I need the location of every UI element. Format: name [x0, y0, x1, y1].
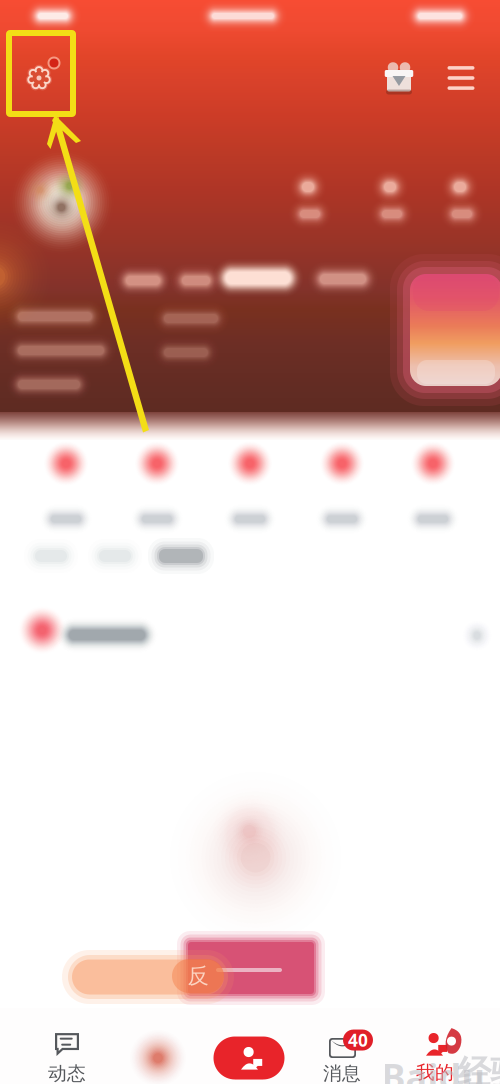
- staticText: 40: [348, 1028, 368, 1051]
- staticText: 消息: [323, 1062, 361, 1084]
- button[interactable]: [114, 441, 200, 533]
- staticText: 反: [187, 963, 208, 989]
- button[interactable]: [23, 441, 109, 533]
- button[interactable]: Menu: [437, 54, 485, 102]
- button[interactable]: Settings: [16, 55, 62, 101]
- button[interactable]: 40: [292, 1020, 392, 1084]
- button[interactable]: 我的: [385, 1020, 485, 1084]
- button[interactable]: 动态: [17, 1020, 117, 1084]
- button[interactable]: [390, 441, 476, 533]
- button[interactable]: Post: [204, 1020, 294, 1084]
- button[interactable]: Discover: [108, 1020, 208, 1084]
- staticText: 我的: [416, 1061, 454, 1084]
- button[interactable]: [299, 441, 385, 533]
- button[interactable]: Gifts: [375, 53, 423, 101]
- staticText: Baidu: [381, 1052, 484, 1084]
- staticText: 动态: [48, 1062, 86, 1084]
- button[interactable]: [207, 441, 293, 533]
- staticText: 经验: [457, 1052, 500, 1084]
